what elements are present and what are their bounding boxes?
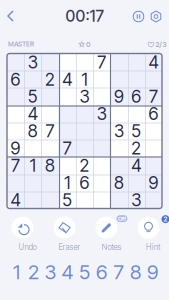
staticText: Undo bbox=[18, 242, 36, 252]
staticText: 4 bbox=[11, 189, 21, 210]
staticText: 4 bbox=[61, 260, 73, 284]
button[interactable]: 3 bbox=[42, 261, 59, 283]
staticText: 2 bbox=[131, 138, 141, 159]
staticText: 5 bbox=[131, 120, 141, 141]
button[interactable]: Undo bbox=[6, 216, 48, 252]
button[interactable]: Off bbox=[90, 216, 132, 252]
staticText: 7 bbox=[11, 155, 20, 176]
staticText: 3 bbox=[97, 103, 107, 124]
staticText: 4 bbox=[28, 103, 38, 124]
staticText: 5 bbox=[79, 260, 90, 284]
button[interactable]: 2 bbox=[132, 216, 169, 252]
staticText: 1 bbox=[30, 155, 36, 176]
staticText: 7 bbox=[46, 120, 55, 141]
button[interactable]: Pause bbox=[130, 8, 147, 25]
button[interactable]: 8 bbox=[127, 261, 144, 283]
staticText: 1 bbox=[13, 260, 20, 284]
staticText: 4 bbox=[131, 155, 141, 176]
staticText: 6 bbox=[148, 103, 158, 124]
staticText: 2 bbox=[28, 260, 39, 284]
staticText: 7 bbox=[113, 260, 123, 284]
staticText: 6 bbox=[96, 260, 107, 284]
staticText: 6 bbox=[79, 172, 89, 193]
staticText: Eraser bbox=[58, 242, 80, 252]
staticText: 1 bbox=[81, 69, 87, 90]
staticText: 8 bbox=[130, 260, 141, 284]
staticText: 0 bbox=[86, 40, 91, 49]
button[interactable]: 6 bbox=[93, 261, 110, 283]
staticText: 8 bbox=[28, 120, 38, 141]
staticText: 1 bbox=[64, 172, 70, 193]
staticText: 2 bbox=[79, 155, 89, 176]
button[interactable]: 4 bbox=[59, 261, 76, 283]
staticText: 6 bbox=[11, 69, 21, 90]
button[interactable]: 9 bbox=[144, 261, 161, 283]
staticText: Hint bbox=[146, 242, 161, 252]
staticText: 9 bbox=[114, 86, 124, 107]
button[interactable]: 1 bbox=[8, 261, 25, 283]
staticText: Off bbox=[118, 215, 126, 222]
staticText: 4 bbox=[62, 69, 72, 90]
button[interactable]: 5 bbox=[76, 261, 93, 283]
staticText: 7 bbox=[97, 52, 106, 73]
staticText: 4 bbox=[148, 52, 158, 73]
staticText: 2 bbox=[45, 69, 55, 90]
button[interactable]: 2 bbox=[25, 261, 42, 283]
button[interactable]: Eraser bbox=[48, 216, 90, 252]
staticText: 5 bbox=[62, 189, 72, 210]
staticText: 7 bbox=[63, 138, 72, 159]
staticText: 00:17 bbox=[65, 6, 103, 26]
staticText: MASTER bbox=[8, 40, 34, 48]
staticText: 6 bbox=[131, 86, 141, 107]
staticText: 3 bbox=[44, 260, 56, 284]
staticText: 3 bbox=[131, 189, 141, 210]
button[interactable]: Settings bbox=[147, 8, 164, 25]
staticText: 9 bbox=[148, 172, 158, 193]
staticText: 5 bbox=[28, 86, 38, 107]
staticText: 8 bbox=[45, 155, 55, 176]
staticText: 3 bbox=[79, 86, 89, 107]
staticText: 8 bbox=[114, 172, 124, 193]
button[interactable]: 7 bbox=[110, 261, 127, 283]
button[interactable]: Back bbox=[1, 4, 20, 28]
staticText: 7 bbox=[149, 86, 158, 107]
staticText: 2 bbox=[163, 215, 167, 223]
staticText: 9 bbox=[147, 260, 158, 284]
staticText: 2/3 bbox=[155, 40, 167, 49]
staticText: 3 bbox=[114, 120, 124, 141]
staticText: Notes bbox=[101, 242, 121, 252]
staticText: 9 bbox=[11, 138, 21, 159]
staticText: 3 bbox=[28, 52, 38, 73]
